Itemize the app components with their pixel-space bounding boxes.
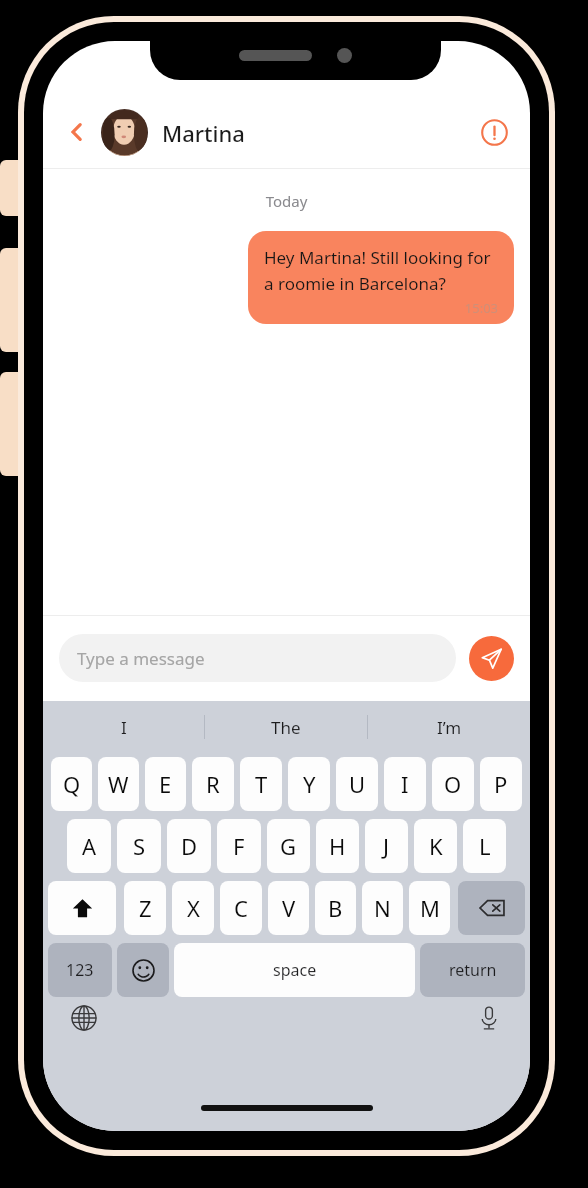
button[interactable]: I’m bbox=[368, 701, 530, 753]
button[interactable]: return bbox=[420, 943, 525, 997]
button[interactable]: O bbox=[432, 757, 474, 811]
staticText: A bbox=[82, 831, 97, 861]
staticText: return bbox=[449, 959, 497, 981]
button[interactable]: Change keyboard bbox=[63, 997, 105, 1039]
staticText: I bbox=[401, 769, 409, 799]
staticText: G bbox=[280, 831, 297, 861]
button[interactable]: V bbox=[268, 881, 309, 935]
staticText: M bbox=[420, 893, 440, 923]
button[interactable]: N bbox=[362, 881, 403, 935]
button[interactable]: U bbox=[336, 757, 378, 811]
staticText: Q bbox=[63, 769, 81, 799]
button[interactable]: Emoji bbox=[117, 943, 169, 997]
staticText: N bbox=[374, 893, 391, 923]
staticText: H bbox=[329, 831, 346, 861]
staticText: U bbox=[349, 769, 366, 799]
button[interactable]: E bbox=[145, 757, 186, 811]
button[interactable]: K bbox=[414, 819, 457, 873]
staticText: T bbox=[255, 769, 268, 799]
staticText: J bbox=[383, 831, 390, 861]
staticText: 15:03 bbox=[264, 299, 498, 317]
button[interactable]: Q bbox=[51, 757, 92, 811]
staticText: K bbox=[429, 831, 443, 861]
staticText: E bbox=[159, 769, 172, 799]
button[interactable]: 123 bbox=[48, 943, 112, 997]
button[interactable]: L bbox=[463, 819, 506, 873]
button[interactable]: X bbox=[172, 881, 214, 935]
button[interactable]: H bbox=[316, 819, 359, 873]
button[interactable]: I bbox=[43, 701, 204, 753]
staticText: space bbox=[273, 959, 317, 981]
staticText: Z bbox=[139, 893, 152, 923]
staticText: R bbox=[206, 769, 220, 799]
button[interactable]: C bbox=[220, 881, 262, 935]
button[interactable]: Type a message bbox=[59, 634, 456, 682]
button[interactable]: Dictate bbox=[468, 997, 510, 1039]
staticText: The bbox=[271, 716, 301, 739]
staticText: P bbox=[494, 769, 508, 799]
staticText: O bbox=[444, 769, 462, 799]
button[interactable]: W bbox=[98, 757, 139, 811]
button[interactable]: Report bbox=[472, 110, 516, 154]
button[interactable]: Hey Martina! Still looking for a roomie … bbox=[248, 231, 514, 324]
staticText: D bbox=[181, 831, 198, 861]
button[interactable]: The bbox=[205, 701, 367, 753]
button[interactable]: T bbox=[240, 757, 282, 811]
staticText: L bbox=[479, 831, 491, 861]
button[interactable]: P bbox=[480, 757, 522, 811]
button[interactable]: Shift bbox=[48, 881, 116, 935]
button[interactable]: G bbox=[267, 819, 310, 873]
button[interactable]: B bbox=[315, 881, 356, 935]
staticText: W bbox=[108, 769, 129, 799]
staticText: B bbox=[328, 893, 343, 923]
staticText: V bbox=[282, 893, 296, 923]
staticText: Type a message bbox=[77, 647, 205, 670]
button[interactable]: Send bbox=[469, 636, 514, 681]
staticText: S bbox=[133, 831, 146, 861]
staticText: 123 bbox=[66, 959, 94, 981]
staticText: Martina bbox=[162, 118, 245, 148]
button[interactable]: I bbox=[384, 757, 426, 811]
staticText: Hey Martina! Still looking for a roomie … bbox=[264, 246, 498, 295]
staticText: F bbox=[233, 831, 245, 861]
button[interactable]: space bbox=[174, 943, 415, 997]
button[interactable]: J bbox=[365, 819, 408, 873]
button[interactable]: S bbox=[117, 819, 161, 873]
staticText: I’m bbox=[437, 716, 462, 739]
button[interactable]: F bbox=[217, 819, 261, 873]
button[interactable]: Z bbox=[124, 881, 166, 935]
staticText: C bbox=[234, 893, 248, 923]
staticText: I bbox=[121, 716, 127, 739]
button[interactable]: R bbox=[192, 757, 234, 811]
button[interactable]: M bbox=[409, 881, 450, 935]
button[interactable]: Back bbox=[57, 112, 97, 152]
button[interactable]: D bbox=[167, 819, 211, 873]
button[interactable]: A bbox=[67, 819, 111, 873]
button[interactable]: Martina bbox=[101, 109, 472, 156]
button[interactable]: Y bbox=[288, 757, 330, 811]
staticText: X bbox=[187, 893, 200, 923]
button[interactable]: Backspace bbox=[458, 881, 525, 935]
staticText: Y bbox=[303, 769, 316, 799]
staticText: Today bbox=[43, 191, 530, 211]
